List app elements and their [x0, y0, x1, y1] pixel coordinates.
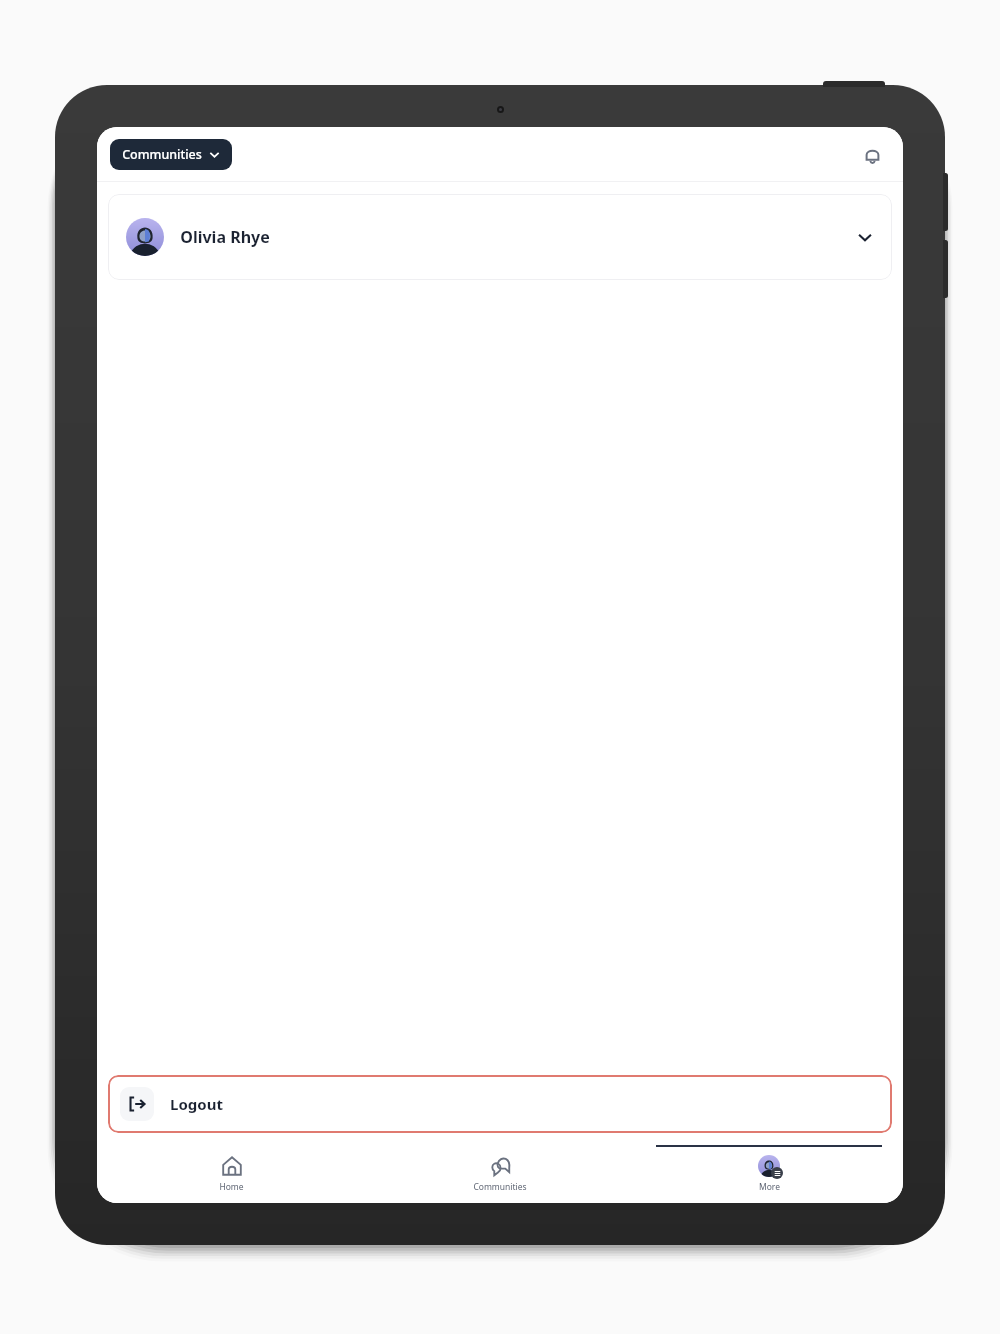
staticText: Communities	[473, 1181, 527, 1193]
button[interactable]: Olivia Rhye	[108, 194, 892, 280]
staticText: More	[759, 1181, 780, 1193]
button[interactable]: Communities	[365, 1145, 634, 1203]
staticText: Olivia Rhye	[180, 226, 270, 248]
staticText: Home	[219, 1181, 244, 1193]
button[interactable]: Logout	[108, 1075, 892, 1133]
button[interactable]: More	[634, 1145, 903, 1203]
staticText: Communities	[122, 146, 202, 163]
button[interactable]: Communities	[110, 139, 232, 170]
button[interactable]: Home	[97, 1145, 365, 1203]
staticText: Logout	[170, 1094, 223, 1114]
button[interactable]: Notifications	[855, 138, 889, 172]
